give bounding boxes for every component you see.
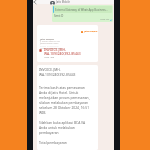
button[interactable]: Jatis Mobile: [37, 25, 98, 62]
staticText: Silahkan buka aplikasi BCA VA Anda untuk…: [39, 120, 91, 135]
staticText: Jatis Mobile: [84, 30, 98, 33]
staticText: Jatis Mobile: [40, 37, 54, 40]
staticText: INVOICE-JMH- WA-1093240(392-85443: [39, 67, 91, 77]
button[interactable]: Back: [33, 0, 37, 4]
staticText: Jl. Prof Dr Satrio No.164: [40, 40, 60, 42]
staticText: Terima kasih atas pemesanan Anda di Jati…: [39, 85, 91, 115]
staticText: Sent :D: [54, 14, 64, 18]
staticText: 10:49 AM: [100, 18, 109, 21]
staticText: Tanggal 24 Oktober 2024: [40, 47, 62, 49]
button[interactable]: External Gateway di WhatsApp Business...: [52, 5, 113, 22]
staticText: Jatis Mobile: [56, 0, 71, 4]
staticText: Invoice #1093240392: [40, 45, 59, 47]
staticText: WA-1093240(392-85443: [44, 51, 81, 55]
staticText: External Gateway di WhatsApp Business...: [55, 8, 108, 12]
button[interactable]: INVOICE-JMH- WA-1093240(392-85443: [37, 65, 98, 150]
staticText: 10:49 • pdf: [44, 56, 55, 59]
staticText: Jakarta Selatan 12950: [40, 42, 59, 44]
staticText: Total pembayaran: [39, 140, 91, 144]
staticText: INVOICE-JMH-: [44, 47, 66, 51]
